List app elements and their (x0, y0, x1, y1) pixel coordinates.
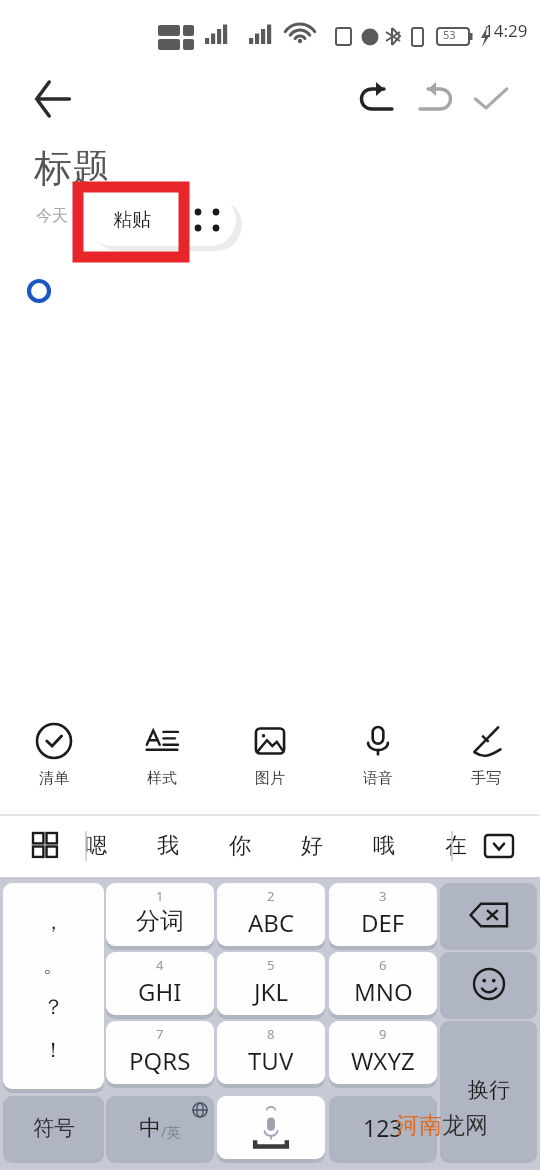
staticText: 清单 (39, 769, 69, 788)
staticText: 8 (267, 1025, 275, 1043)
staticText: 手写 (471, 769, 501, 788)
button[interactable]: 4 (106, 952, 214, 1015)
staticText: 6 (379, 956, 387, 974)
staticText: 你 (229, 832, 251, 860)
staticText: 标题 (34, 144, 110, 192)
button[interactable]: 图片 (216, 695, 324, 815)
staticText: 1 (156, 887, 164, 905)
button[interactable]: Switch language (106, 1096, 214, 1159)
staticText: 7 (156, 1025, 164, 1043)
staticText: 龙网 (442, 1111, 488, 1140)
staticText: ， (43, 909, 64, 935)
staticText: 样式 (147, 769, 177, 788)
staticText: 14:29 (484, 19, 528, 42)
button[interactable]: Hide keyboard (474, 821, 524, 871)
staticText: 在 (445, 832, 467, 860)
staticText: TUV (248, 1044, 294, 1077)
button[interactable]: 好 (295, 829, 329, 863)
button[interactable]: 哦 (367, 829, 401, 863)
staticText: 好 (301, 832, 323, 860)
button[interactable]: 样式 (108, 695, 216, 815)
staticText: MNO (354, 975, 413, 1008)
staticText: JKL (254, 975, 288, 1008)
button[interactable]: 你 (223, 829, 257, 863)
button[interactable]: Emoji (440, 952, 537, 1015)
staticText: 分词 (136, 906, 184, 936)
button[interactable]: 手写 (432, 695, 540, 815)
staticText: 3 (379, 887, 387, 905)
staticText: 9 (379, 1025, 387, 1043)
staticText: ！ (43, 1037, 64, 1063)
button[interactable]: Delete (440, 883, 537, 946)
staticText: 换行 (468, 1077, 510, 1103)
button[interactable]: ， (3, 883, 104, 1089)
staticText: 中 (139, 1114, 161, 1142)
staticText: 符号 (33, 1115, 75, 1141)
staticText: PQRS (129, 1044, 191, 1077)
button[interactable]: Done (462, 71, 518, 127)
staticText: 河南 (396, 1111, 442, 1140)
button[interactable]: 在 (439, 829, 473, 863)
button[interactable]: Back (30, 75, 78, 123)
staticText: DEF (361, 906, 405, 939)
staticText: 53 (443, 27, 456, 42)
button[interactable]: 符号 (3, 1096, 104, 1159)
button[interactable]: 语音 (324, 695, 432, 815)
button[interactable]: 嗯 (79, 829, 113, 863)
button[interactable]: 2 (217, 883, 325, 946)
staticText: 4 (156, 956, 164, 974)
button[interactable]: Undo (350, 71, 406, 127)
staticText: 。 (43, 952, 64, 978)
staticText: /英 (161, 1122, 181, 1141)
button[interactable]: 7 (106, 1021, 214, 1084)
button[interactable]: Space (217, 1096, 325, 1159)
button[interactable]: 粘贴 (86, 194, 178, 246)
button[interactable]: 我 (151, 829, 185, 863)
staticText: 哦 (373, 832, 395, 860)
button[interactable]: 9 (329, 1021, 437, 1084)
staticText: GHI (138, 975, 182, 1008)
staticText: 我 (157, 832, 179, 860)
button[interactable]: Enter (440, 1021, 537, 1159)
button[interactable]: 清单 (0, 695, 108, 815)
button[interactable]: 1 (106, 883, 214, 946)
staticText: 语音 (363, 769, 393, 788)
button[interactable]: Redo (406, 71, 462, 127)
button[interactable]: 5 (217, 952, 325, 1015)
button[interactable]: 8 (217, 1021, 325, 1084)
button[interactable]: 123 (329, 1096, 437, 1159)
button[interactable]: Keyboard layouts (18, 818, 74, 874)
staticText: 2 (267, 887, 275, 905)
staticText: WXYZ (351, 1044, 415, 1077)
staticText: 123 (363, 1112, 403, 1143)
staticText: ？ (43, 994, 64, 1020)
staticText: 图片 (255, 769, 285, 788)
staticText: 嗯 (85, 832, 107, 860)
staticText: 粘贴 (113, 208, 151, 232)
button[interactable]: More (178, 194, 236, 246)
button[interactable]: 6 (329, 952, 437, 1015)
staticText: ABC (248, 906, 295, 939)
staticText: 今天 (36, 206, 68, 226)
button[interactable]: 3 (329, 883, 437, 946)
staticText: 5 (267, 956, 275, 974)
